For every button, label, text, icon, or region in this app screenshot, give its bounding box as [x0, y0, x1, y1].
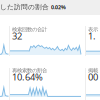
staticText: 検索回数の合計 [12, 26, 47, 33]
staticText: 1. [88, 30, 96, 42]
staticText: 00 [88, 71, 98, 83]
staticText: 32 [12, 30, 22, 42]
staticText: した訪問の割合 [0, 3, 49, 11]
staticText: 10.64% [12, 71, 43, 83]
staticText: 掲載 [88, 67, 98, 74]
staticText: 再検索数の割合 [12, 67, 47, 74]
staticText: 表示 [88, 26, 98, 33]
staticText: 0.02% [51, 4, 66, 11]
